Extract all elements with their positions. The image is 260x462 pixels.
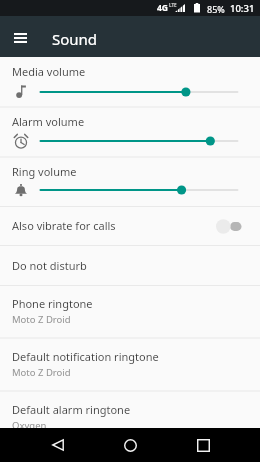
button[interactable]: Open navigation drawer bbox=[1, 19, 41, 55]
button[interactable]: Also vibrate for calls bbox=[0, 206, 260, 245]
staticText: Default alarm ringtone bbox=[12, 402, 131, 417]
staticText: 85% bbox=[207, 3, 225, 15]
staticText: Moto Z Droid bbox=[12, 366, 71, 379]
button[interactable]: Default alarm ringtone bbox=[0, 391, 260, 429]
staticText: 10:31 bbox=[230, 2, 255, 15]
button[interactable]: Back bbox=[36, 428, 80, 462]
staticText: Moto Z Droid bbox=[12, 313, 71, 326]
staticText: Media volume bbox=[12, 64, 86, 79]
button[interactable]: Home bbox=[108, 428, 152, 462]
staticText: Sound bbox=[52, 29, 98, 49]
staticText: LTE bbox=[169, 2, 177, 8]
staticText: Do not disturb bbox=[12, 258, 87, 273]
button[interactable]: Ring volume bbox=[0, 157, 260, 207]
staticText: 4G bbox=[157, 2, 169, 14]
button[interactable]: Default notification ringtone bbox=[0, 338, 260, 391]
button[interactable]: Recent apps bbox=[181, 428, 225, 462]
staticText: Oxygen bbox=[12, 419, 47, 432]
staticText: Alarm volume bbox=[12, 114, 85, 129]
button[interactable]: Do not disturb bbox=[0, 245, 260, 285]
button[interactable]: Phone ringtone bbox=[0, 285, 260, 338]
staticText: Default notification ringtone bbox=[12, 349, 159, 364]
button[interactable]: Media volume bbox=[0, 57, 260, 107]
staticText: Ring volume bbox=[12, 164, 77, 179]
staticText: Also vibrate for calls bbox=[12, 218, 116, 233]
button[interactable]: Alarm volume bbox=[0, 107, 260, 157]
staticText: Phone ringtone bbox=[12, 296, 93, 311]
